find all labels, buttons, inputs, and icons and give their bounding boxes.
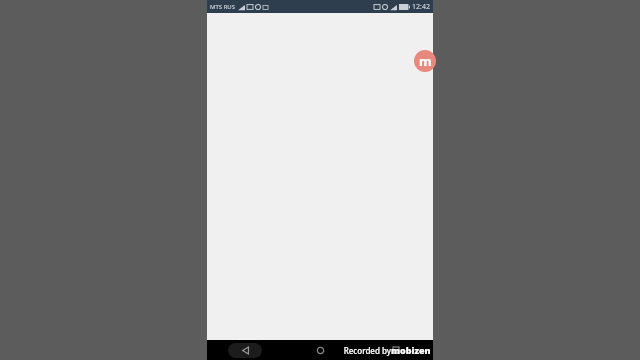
button[interactable]: Recent apps: [358, 340, 433, 360]
button[interactable]: Back: [207, 340, 283, 360]
staticText: mobizen: [391, 344, 431, 356]
button[interactable]: Home: [283, 340, 358, 360]
staticText: 12:42: [412, 2, 430, 12]
staticText: m: [419, 52, 432, 70]
staticText: Recorded by: [341, 345, 391, 356]
button[interactable]: Mobizen recorder: [414, 50, 436, 72]
staticText: MTS RUS: [210, 3, 236, 11]
